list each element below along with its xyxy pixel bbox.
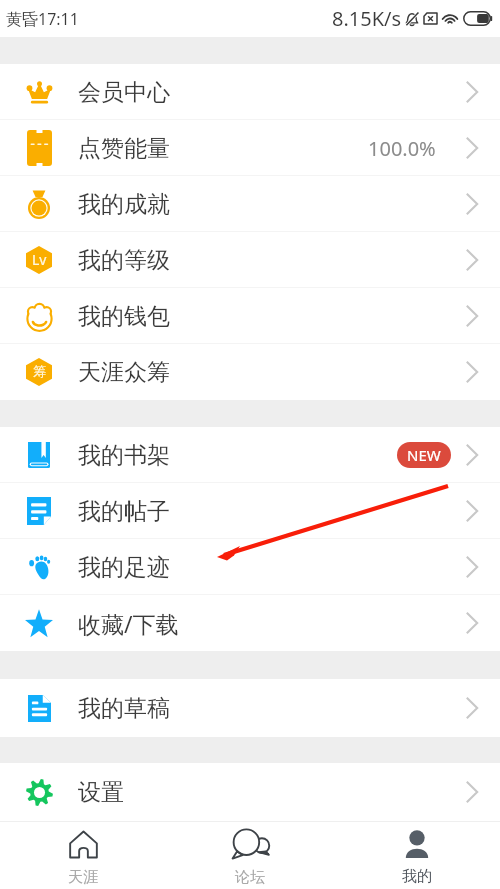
button[interactable]: 天涯 bbox=[0, 822, 166, 889]
button[interactable]: 收藏/下载 bbox=[0, 595, 500, 651]
button[interactable]: Lv bbox=[0, 232, 500, 288]
staticText: 会员中心 bbox=[78, 78, 170, 107]
button[interactable]: 点赞能量 bbox=[0, 120, 500, 176]
button[interactable]: 设置 bbox=[0, 763, 500, 821]
staticText: 我的等级 bbox=[78, 246, 170, 275]
button[interactable]: 论坛 bbox=[166, 822, 333, 889]
other: Profile bbox=[403, 830, 431, 858]
staticText: 天涯众筹 bbox=[78, 358, 170, 387]
button[interactable]: 我的钱包 bbox=[0, 288, 500, 344]
staticText: 100.0% bbox=[368, 135, 436, 162]
staticText: 黄昏17:11 bbox=[6, 8, 79, 30]
staticText: 收藏/下载 bbox=[78, 608, 179, 639]
button[interactable]: 我的草稿 bbox=[0, 679, 500, 737]
staticText: 我的足迹 bbox=[78, 553, 170, 582]
staticText: 筹 bbox=[33, 363, 46, 379]
staticText: 我的成就 bbox=[78, 190, 170, 219]
button[interactable]: 会员中心 bbox=[0, 64, 500, 120]
staticText: 我的 bbox=[402, 867, 432, 886]
staticText: 点赞能量 bbox=[78, 134, 170, 163]
staticText: 我的钱包 bbox=[78, 302, 170, 331]
button[interactable]: 我的帖子 bbox=[0, 483, 500, 539]
button[interactable]: 筹 bbox=[0, 344, 500, 400]
button[interactable]: 我的足迹 bbox=[0, 539, 500, 595]
staticText: 我的草稿 bbox=[78, 694, 170, 723]
staticText: 我的帖子 bbox=[78, 497, 170, 526]
staticText: 天涯 bbox=[68, 868, 98, 887]
staticText: 论坛 bbox=[235, 868, 265, 887]
button[interactable]: Profile bbox=[333, 822, 500, 889]
staticText: 8.15K/s bbox=[332, 5, 402, 32]
button[interactable]: 我的书架 bbox=[0, 427, 500, 483]
staticText: 我的书架 bbox=[78, 441, 170, 470]
staticText: 设置 bbox=[78, 778, 124, 807]
staticText: Lv bbox=[32, 250, 47, 269]
staticText: NEW bbox=[407, 445, 441, 465]
button[interactable]: 我的成就 bbox=[0, 176, 500, 232]
